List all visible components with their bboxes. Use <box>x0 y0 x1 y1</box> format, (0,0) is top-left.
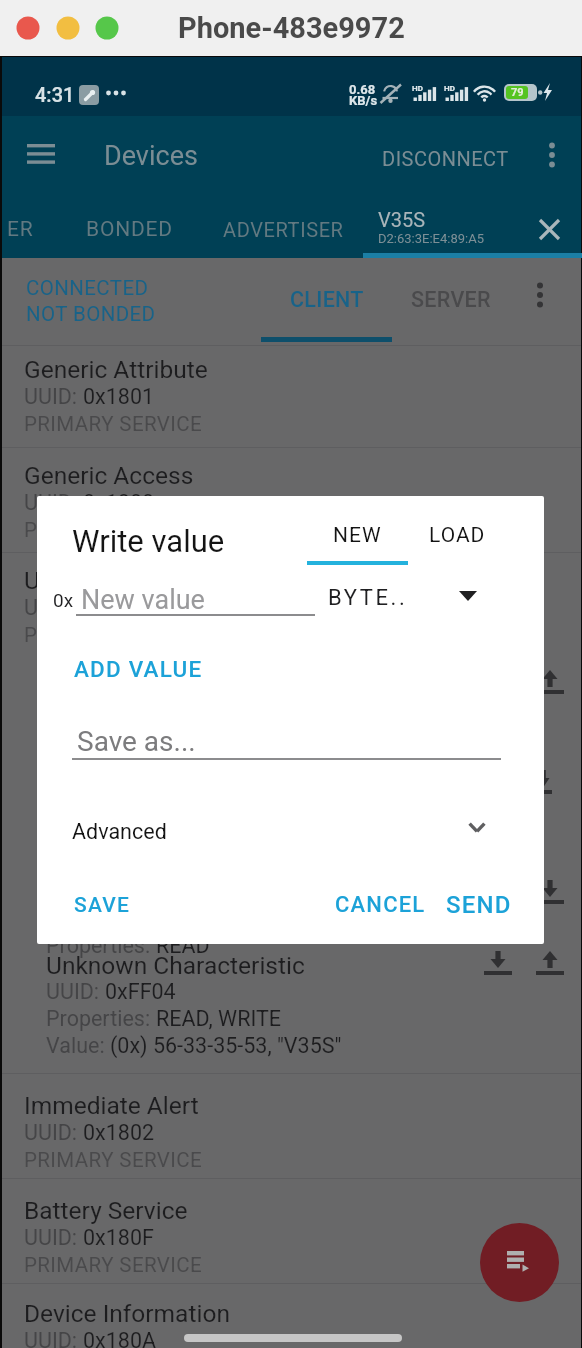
button[interactable]: SAVE <box>57 879 157 931</box>
button[interactable]: SEND <box>433 879 525 931</box>
button[interactable]: More options <box>529 132 575 178</box>
staticText: V35S <box>378 208 426 231</box>
staticText: Unknown Characteristic <box>46 668 305 697</box>
button[interactable]: Advanced <box>37 801 544 861</box>
staticText: 0xFF03 <box>105 906 176 931</box>
button[interactable]: Run macro <box>480 1223 559 1302</box>
staticText: 79 <box>511 86 524 99</box>
button[interactable]: Immediate Alert <box>2 1091 581 1187</box>
staticText: Unknown Characteristic <box>46 951 305 980</box>
staticText: PRIMARY SERVICE <box>24 412 203 436</box>
staticText: NOT BONDED <box>26 302 156 326</box>
button[interactable]: Read <box>522 768 554 798</box>
button[interactable]: NEW <box>329 520 385 550</box>
staticText: ADVERTISER <box>223 218 344 241</box>
staticText: PRIMARY SERVICE <box>24 518 203 542</box>
staticText: 0x1802 <box>83 1120 155 1145</box>
staticText: (0x) 56-33-35-53, "V35S" <box>110 1033 342 1058</box>
button[interactable]: BYTE.. <box>328 576 524 622</box>
button[interactable]: Read <box>534 878 566 908</box>
staticText: 0xFF04 <box>105 979 176 1004</box>
button[interactable]: ADD VALUE <box>57 643 227 695</box>
staticText: CLIENT <box>290 287 364 312</box>
button[interactable]: ADVERTISER <box>208 200 358 258</box>
staticText: Devices <box>104 140 198 172</box>
staticText: 4:31 <box>35 83 75 106</box>
staticText: BONDED <box>86 217 173 242</box>
staticText: UUID: <box>24 595 83 620</box>
staticText: Properties: <box>46 1006 156 1031</box>
staticText: NOTIFY <box>156 723 230 748</box>
button[interactable]: Device Information <box>2 1299 581 1348</box>
staticText: Save as... <box>77 725 196 758</box>
staticText: Device Information <box>24 1299 230 1328</box>
staticText: Properties: <box>46 933 156 958</box>
button[interactable]: CLIENT <box>260 260 394 338</box>
staticText: PRIMARY SERVICE <box>24 1253 203 1277</box>
staticText: UUID: <box>24 1328 83 1348</box>
staticText: PRIMARY SERVICE <box>24 1148 203 1172</box>
button[interactable]: Write <box>534 668 566 698</box>
button[interactable]: V35S <box>363 200 582 258</box>
staticText: READ, WRITE <box>156 1006 282 1031</box>
staticText: Advanced <box>72 819 167 844</box>
staticText: UUID: <box>46 906 105 931</box>
button[interactable]: Close <box>526 206 572 252</box>
button[interactable]: SERVER <box>394 260 508 338</box>
button[interactable]: ER <box>0 200 55 258</box>
button[interactable]: BONDED <box>64 200 194 258</box>
staticText: D2:63:3E:E4:89:A5 <box>378 231 484 246</box>
button[interactable]: Menu <box>27 143 56 172</box>
button[interactable]: Unknown Characteristic <box>2 668 581 764</box>
staticText: ADD VALUE <box>74 656 203 682</box>
staticText: SEND <box>446 891 512 919</box>
staticText: Value: <box>46 1033 110 1058</box>
button[interactable]: Unknown Characteristic <box>2 878 581 974</box>
staticText: Properties: <box>46 723 156 748</box>
staticText: CONNECTED <box>26 276 149 300</box>
button[interactable]: Battery Service <box>2 1196 581 1292</box>
staticText: Battery Service <box>24 1196 188 1225</box>
staticText: New value <box>81 584 205 616</box>
staticText: HD <box>412 84 423 93</box>
button[interactable]: CANCEL <box>321 879 427 931</box>
staticText: Write value <box>72 523 225 559</box>
staticText: CANCEL <box>335 892 426 918</box>
button[interactable]: Unknown Service <box>2 566 581 662</box>
staticText: Generic Access <box>24 461 194 490</box>
staticText: HD <box>444 84 455 93</box>
button[interactable]: DISCONNECT <box>372 132 518 184</box>
staticText: Generic Attribute <box>24 355 208 384</box>
staticText: Unknown Service <box>24 566 212 595</box>
staticText: WRITE NO RESPONSE <box>156 823 367 848</box>
button[interactable]: Generic Attribute <box>2 355 581 451</box>
button[interactable]: Unknown Characteristic <box>2 951 581 1077</box>
staticText: Immediate Alert <box>24 1091 199 1120</box>
staticText: UUID: <box>24 384 83 409</box>
staticText: SAVE <box>74 893 131 918</box>
staticText: 0x1801 <box>83 384 155 409</box>
button[interactable]: Generic Access <box>2 461 581 557</box>
staticText: BYTE.. <box>328 585 408 611</box>
button[interactable]: Read <box>482 949 514 979</box>
button[interactable]: Unknown Characteristic <box>2 768 581 864</box>
staticText: READ <box>156 933 210 958</box>
button[interactable]: Write <box>534 949 566 979</box>
staticText: 0x180F <box>83 1225 154 1250</box>
staticText: DISCONNECT <box>382 147 509 170</box>
button[interactable]: LOAD <box>426 520 488 550</box>
button[interactable]: More options <box>514 269 566 321</box>
staticText: PRIMARY SERVICE <box>24 623 203 647</box>
staticText: Unknown Characteristic <box>46 878 305 907</box>
staticText: KB/s <box>349 93 378 108</box>
staticText: 0x <box>53 589 74 611</box>
staticText: 0x1802 <box>83 595 155 620</box>
staticText: 0x1800 <box>83 490 155 515</box>
staticText: LOAD <box>429 523 486 548</box>
staticText: 0x180A <box>83 1328 157 1348</box>
